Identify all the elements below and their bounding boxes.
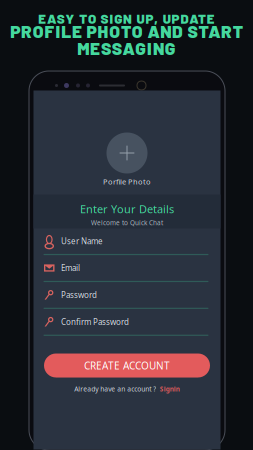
button[interactable]: Confirm Password [33, 309, 220, 336]
staticText: MESSAGING [77, 38, 176, 58]
staticText: Porfile Photo [103, 176, 151, 187]
staticText: PROFILE PHOTO AND START [10, 21, 243, 41]
button[interactable]: CREATE ACCOUNT [44, 353, 210, 377]
staticText: User Name [61, 236, 103, 247]
staticText: Enter Your Details [80, 201, 174, 216]
staticText: Confirm Password [61, 316, 129, 327]
button[interactable]: Password [33, 282, 220, 309]
staticText: Already have an account ? [74, 384, 156, 394]
staticText: Email [61, 263, 80, 273]
button[interactable]: User Name [33, 228, 220, 255]
staticText: Password [61, 289, 97, 300]
staticText: Welcome to Quick Chat [91, 218, 163, 227]
staticText: CREATE ACCOUNT [84, 359, 170, 372]
staticText: Signin [160, 385, 180, 393]
staticText: EASY TO SIGN UP, UPDATE [38, 10, 215, 26]
button[interactable]: Add profile photo [33, 132, 220, 187]
button[interactable]: Email [33, 255, 220, 282]
button[interactable]: Already have an account ? [33, 383, 220, 394]
